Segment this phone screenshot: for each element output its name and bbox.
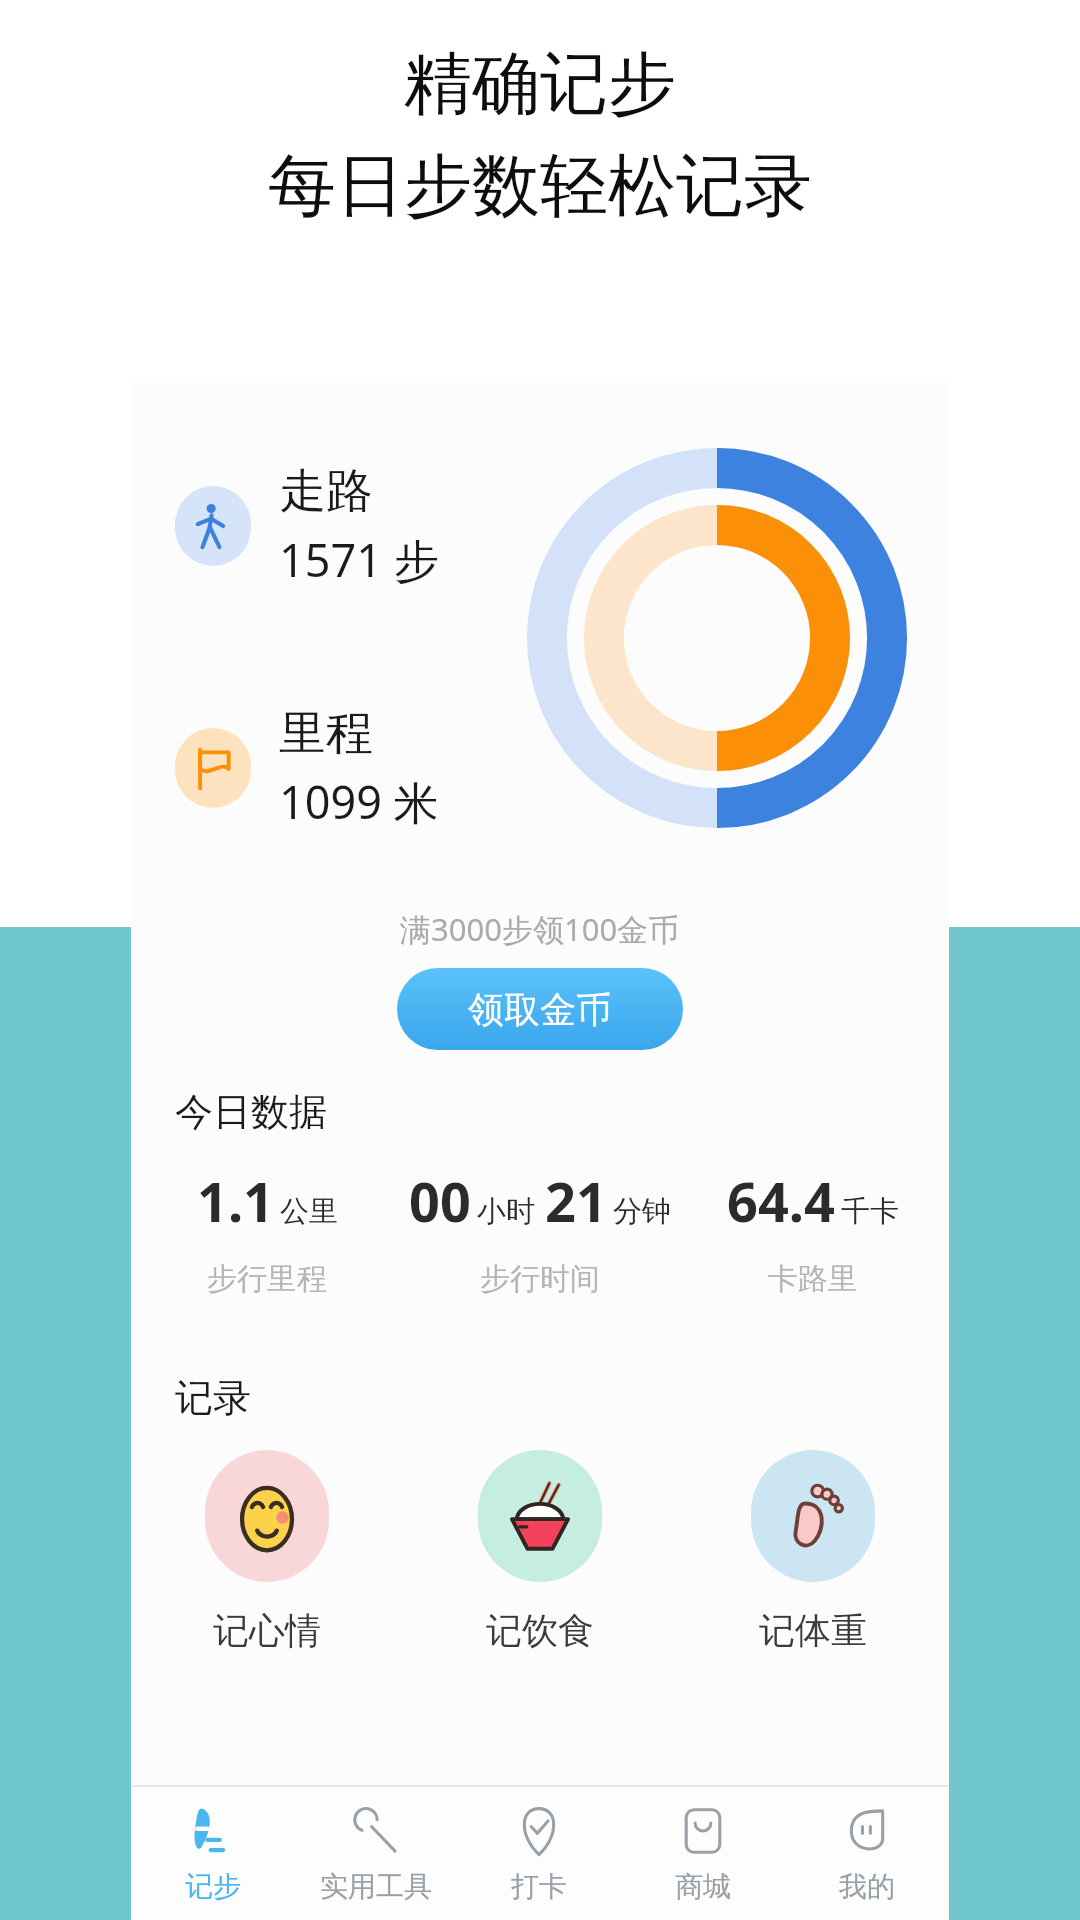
staticText: 记体重: [759, 1608, 867, 1653]
staticText: 精确记步: [404, 42, 676, 128]
button[interactable]: 记步: [131, 1787, 294, 1904]
button[interactable]: 打卡: [457, 1787, 621, 1904]
staticText: 记饮食: [486, 1608, 594, 1653]
button[interactable]: 64.4: [676, 1164, 949, 1298]
staticText: 卡路里: [768, 1260, 858, 1298]
staticText: 1.1: [197, 1164, 274, 1238]
staticText: 步行里程: [207, 1260, 327, 1298]
staticText: 64.4: [727, 1164, 835, 1238]
staticText: 记录: [175, 1374, 251, 1422]
button[interactable]: 1.1: [131, 1164, 403, 1298]
staticText: 公里: [280, 1193, 338, 1230]
staticText: 1571 步: [279, 529, 439, 590]
staticText: 步行时间: [480, 1260, 600, 1298]
button[interactable]: 00: [409, 1164, 671, 1298]
staticText: 千卡: [841, 1193, 899, 1230]
staticText: 里程: [279, 704, 373, 763]
staticText: 满3000步领100金币: [400, 908, 680, 950]
staticText: 实用工具: [320, 1869, 432, 1904]
button[interactable]: 记饮食: [403, 1450, 676, 1653]
staticText: 打卡: [511, 1869, 567, 1904]
staticText: 1099 米: [279, 771, 439, 832]
staticText: 今日数据: [175, 1088, 327, 1136]
staticText: 小时: [477, 1193, 535, 1230]
staticText: 我的: [839, 1869, 895, 1904]
button[interactable]: 领取金币: [397, 968, 683, 1050]
staticText: 21: [545, 1164, 607, 1238]
button[interactable]: 记心情: [131, 1450, 403, 1653]
staticText: 每日步数轻松记录: [268, 144, 812, 230]
staticText: 商城: [675, 1869, 731, 1904]
button[interactable]: 走路: [175, 462, 439, 590]
button[interactable]: 记体重: [676, 1450, 949, 1653]
button[interactable]: 实用工具: [294, 1787, 457, 1904]
staticText: 领取金币: [468, 987, 612, 1032]
button[interactable]: 我的: [785, 1787, 949, 1904]
staticText: 分钟: [613, 1193, 671, 1230]
button[interactable]: 商城: [621, 1787, 785, 1904]
staticText: 走路: [279, 462, 373, 521]
button[interactable]: 里程: [175, 704, 439, 832]
staticText: 记步: [185, 1869, 241, 1904]
staticText: 记心情: [213, 1608, 321, 1653]
staticText: 00: [409, 1164, 471, 1238]
